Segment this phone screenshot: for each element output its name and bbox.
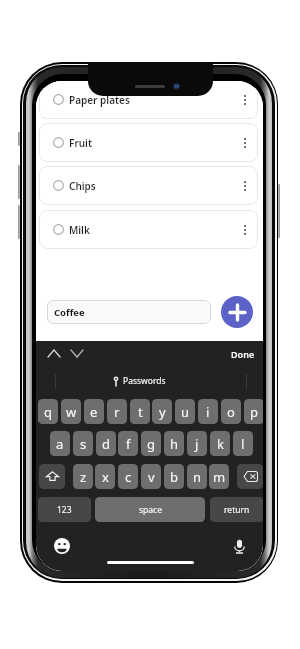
button[interactable]: h [164,431,184,456]
button[interactable]: Emoji [52,536,72,556]
staticText: o [227,403,235,421]
button[interactable]: More options [235,176,255,196]
button[interactable]: More options [235,220,255,240]
staticText: Coffee [54,306,85,319]
button[interactable]: o [221,399,241,424]
button[interactable]: x [95,464,115,489]
button[interactable]: m [209,464,229,489]
staticText: u [181,403,190,421]
staticText: Done [231,348,255,360]
button[interactable]: d [96,431,116,456]
staticText: s [80,435,87,453]
button[interactable]: t [130,399,150,424]
staticText: m [213,468,226,486]
button[interactable]: a [50,431,70,456]
button[interactable]: s [73,431,93,456]
button[interactable]: More options [235,90,255,110]
staticText: i [206,403,210,421]
staticText: Passwords [123,375,166,387]
button[interactable]: v [141,464,161,489]
button[interactable]: Milk [39,210,258,249]
button[interactable]: r [107,399,127,424]
staticText: y [159,403,166,421]
staticText: Chips [69,179,96,193]
staticText: w [66,403,77,421]
staticText: f [126,435,131,453]
staticText: Paper plates [69,93,130,107]
staticText: v [148,468,155,486]
button[interactable]: 123 [38,497,91,522]
button[interactable]: More options [235,133,255,153]
staticText: j [195,435,199,453]
button[interactable]: g [141,431,161,456]
button[interactable]: Coffee [47,300,211,324]
staticText: space [139,504,162,516]
staticText: l [241,435,245,453]
button[interactable]: p [244,399,263,424]
staticText: k [217,435,224,453]
button[interactable]: w [61,399,81,424]
button[interactable]: Paper plates [39,81,258,119]
staticText: z [80,468,87,486]
button[interactable]: Shift [39,464,65,489]
button[interactable]: j [187,431,207,456]
staticText: Milk [69,223,90,237]
button[interactable]: y [152,399,172,424]
staticText: r [114,403,120,421]
button[interactable]: Fruit [39,123,258,162]
button[interactable]: u [175,399,195,424]
button[interactable]: i [198,399,218,424]
staticText: h [170,435,179,453]
button[interactable]: Previous field [44,345,63,362]
button[interactable]: c [118,464,138,489]
button[interactable]: k [210,431,230,456]
button[interactable]: Backspace [237,464,263,489]
button[interactable]: Add item [221,296,253,328]
staticText: p [250,403,258,421]
button[interactable]: Next field [67,345,86,362]
button[interactable]: b [164,464,184,489]
staticText: a [56,435,64,453]
staticText: return [224,504,250,516]
button[interactable]: return [210,497,263,522]
staticText: n [193,468,202,486]
staticText: c [125,468,132,486]
staticText: 123 [57,504,72,516]
staticText: e [90,403,98,421]
button[interactable]: l [233,431,253,456]
button[interactable]: z [73,464,93,489]
staticText: x [102,468,109,486]
button[interactable]: space [95,497,205,522]
button[interactable]: Passwords [113,375,166,387]
button[interactable]: q [38,399,58,424]
staticText: b [170,468,178,486]
button[interactable]: Done [227,345,259,363]
staticText: t [138,403,143,421]
button[interactable]: n [187,464,207,489]
staticText: g [147,435,155,453]
staticText: d [102,435,110,453]
staticText: q [44,403,52,421]
button[interactable]: Chips [39,166,258,205]
button[interactable]: f [118,431,138,456]
button[interactable]: e [84,399,104,424]
button[interactable]: Dictation [229,536,249,556]
staticText: Fruit [69,136,92,150]
